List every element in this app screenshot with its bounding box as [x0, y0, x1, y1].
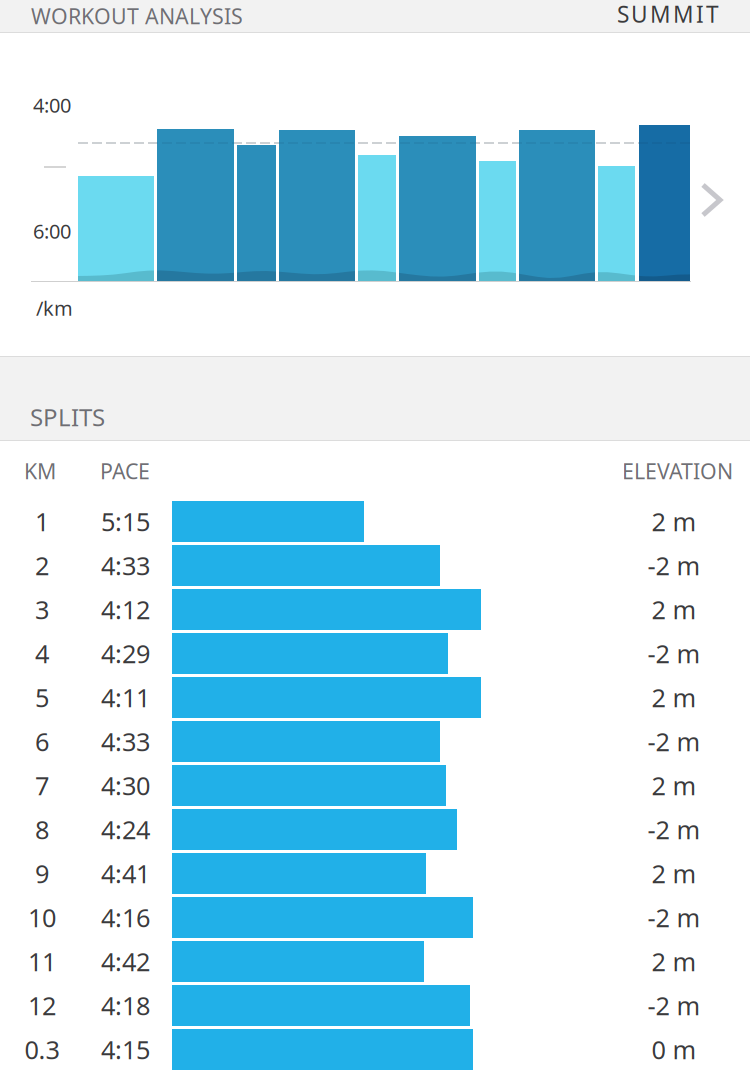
button[interactable]: 6 — [0, 721, 750, 765]
staticText: -2 m — [647, 989, 700, 1022]
staticText: 4:18 — [101, 989, 150, 1022]
button[interactable]: 11 — [0, 941, 750, 985]
button[interactable]: 2 — [0, 545, 750, 589]
staticText: -2 m — [647, 637, 700, 670]
button[interactable]: WORKOUT ANALYSIS — [0, 0, 330, 32]
button[interactable]: 4 — [0, 633, 750, 677]
staticText: /km — [36, 295, 73, 321]
staticText: 0.3 — [24, 1033, 59, 1066]
staticText: 2 m — [651, 505, 696, 538]
staticText: 2 m — [651, 857, 696, 890]
staticText: 2 — [35, 549, 49, 582]
staticText: S U M M I T — [617, 0, 719, 29]
staticText: 2 m — [651, 681, 696, 714]
staticText: 4:33 — [101, 725, 150, 758]
staticText: 6 — [35, 725, 49, 758]
button[interactable]: 0.3 — [0, 1029, 750, 1070]
staticText: 12 — [28, 989, 56, 1022]
button[interactable]: 10 — [0, 897, 750, 941]
button[interactable]: 8 — [0, 809, 750, 853]
button[interactable]: 1 — [0, 501, 750, 545]
staticText: 2 m — [651, 945, 696, 978]
staticText: 4:00 — [33, 92, 71, 118]
staticText: 6:00 — [33, 218, 71, 244]
staticText: KM — [24, 457, 56, 485]
staticText: 4:11 — [101, 681, 150, 714]
staticText: -2 m — [647, 725, 700, 758]
button[interactable]: 7 — [0, 765, 750, 809]
button[interactable]: 9 — [0, 853, 750, 897]
staticText: SPLITS — [30, 401, 105, 433]
staticText: 4:12 — [101, 593, 150, 626]
button[interactable]: Next — [0, 0, 23, 36]
staticText: 8 — [35, 813, 49, 846]
staticText: 5 — [35, 681, 49, 714]
staticText: 10 — [28, 901, 56, 934]
staticText: 11 — [28, 945, 56, 978]
staticText: 4:24 — [101, 813, 150, 846]
staticText: 5:15 — [101, 505, 150, 538]
staticText: 4:16 — [101, 901, 150, 934]
staticText: 0 m — [651, 1033, 696, 1066]
staticText: 4:33 — [101, 549, 150, 582]
staticText: 4 — [35, 637, 49, 670]
button[interactable]: 12 — [0, 985, 750, 1029]
staticText: -2 m — [647, 813, 700, 846]
staticText: WORKOUT ANALYSIS — [31, 2, 243, 30]
staticText: -2 m — [647, 901, 700, 934]
staticText: 4:30 — [101, 769, 150, 802]
staticText: 4:29 — [101, 637, 150, 670]
staticText: PACE — [100, 457, 150, 485]
staticText: 3 — [35, 593, 49, 626]
staticText: -2 m — [647, 549, 700, 582]
staticText: 4:41 — [101, 857, 150, 890]
button[interactable]: S U M M I T — [0, 0, 200, 32]
staticText: 2 m — [651, 593, 696, 626]
staticText: 2 m — [651, 769, 696, 802]
staticText: 4:15 — [101, 1033, 150, 1066]
staticText: 9 — [35, 857, 49, 890]
staticText: 4:42 — [101, 945, 150, 978]
button[interactable]: 3 — [0, 589, 750, 633]
staticText: 7 — [35, 769, 49, 802]
staticText: ELEVATION — [622, 457, 733, 485]
button[interactable]: 5 — [0, 677, 750, 721]
staticText: 1 — [35, 505, 49, 538]
